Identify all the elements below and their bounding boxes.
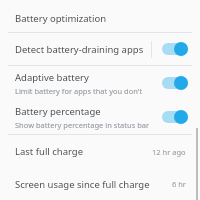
staticText: Limit battery for apps that you don't us… [15,86,151,96]
staticText: 12 hr ago [152,147,186,157]
button[interactable]: Adaptive battery [0,66,200,100]
button[interactable]: Battery percentage [162,110,194,124]
button[interactable]: Screen usage since full charge [0,168,200,200]
staticText: Battery percentage [15,105,101,118]
staticText: Battery optimization [15,12,107,25]
button[interactable]: Adaptive battery [162,76,194,90]
staticText: 6 hr [172,179,186,189]
staticText: Adaptive battery [15,71,89,84]
button[interactable]: Battery optimization [0,4,200,32]
button[interactable]: Last full charge [0,135,200,168]
staticText: Detect battery-draining apps [15,43,144,56]
button[interactable]: Detect battery-draining apps [0,33,200,65]
staticText: Last full charge [15,145,84,158]
button[interactable]: Battery percentage [0,100,200,134]
button[interactable]: Detect battery-draining apps [162,42,194,56]
staticText: Show battery percentage in status bar [15,120,150,130]
staticText: Screen usage since full charge [15,178,150,191]
